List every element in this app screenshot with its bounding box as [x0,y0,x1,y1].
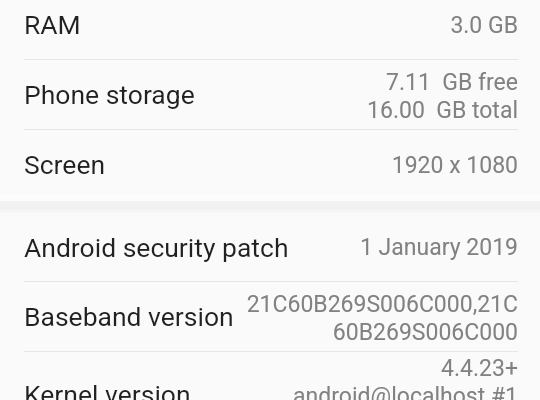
button[interactable]: Phone storage [0,60,540,129]
staticText: 21C60B269S006C000,21C 60B269S006C000 [246,291,518,346]
staticText: Android security patch [24,232,289,263]
staticText: 4.4.23+ android@localhost #1 Mon Jan 1 0… [210,355,518,400]
staticText: 1 January 2019 [359,234,518,261]
staticText: Screen [24,149,106,180]
staticText: Kernel version [24,379,191,400]
button[interactable]: RAM [0,0,540,59]
staticText: 3.0 GB [450,12,518,39]
staticText: Baseband version [24,301,234,332]
staticText: Phone storage [24,79,195,110]
staticText: 7.11 GB free 16.00 GB total [367,69,518,124]
staticText: RAM [24,9,81,40]
button[interactable]: Kernel version [0,352,540,400]
button[interactable]: Screen [0,130,540,194]
button[interactable]: Android security patch [0,213,540,281]
button[interactable]: Baseband version [0,282,540,351]
staticText: 1920 x 1080 [391,152,518,179]
